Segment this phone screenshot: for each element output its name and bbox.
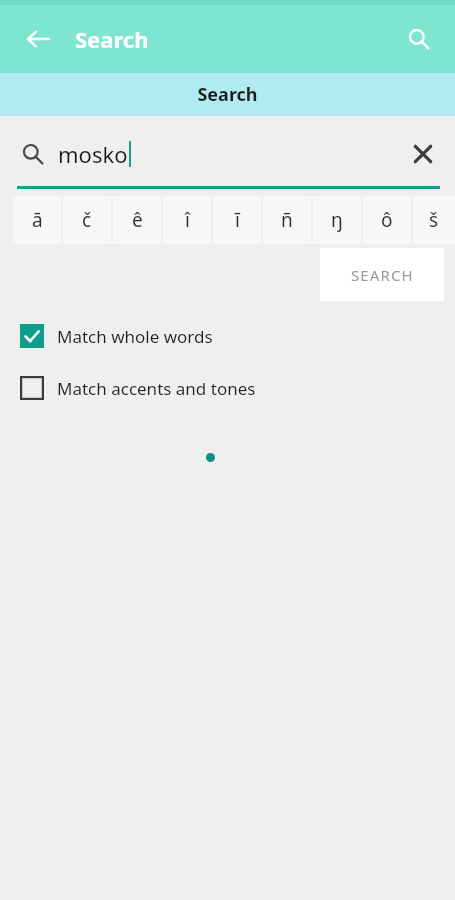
staticText: ê xyxy=(132,207,143,233)
staticText: č xyxy=(82,207,92,233)
staticText: î xyxy=(185,207,190,233)
button[interactable]: Clear search xyxy=(401,132,445,176)
staticText: ā xyxy=(32,207,43,233)
staticText: š xyxy=(429,207,439,233)
button[interactable]: š xyxy=(413,196,455,244)
button[interactable]: î xyxy=(163,196,211,244)
staticText: Search xyxy=(197,82,258,107)
button[interactable]: ā xyxy=(13,196,61,244)
button[interactable]: SEARCH xyxy=(320,248,444,301)
button[interactable]: Back xyxy=(14,15,62,63)
button[interactable]: Match accents and tones xyxy=(0,366,455,410)
button[interactable]: Search xyxy=(0,73,455,116)
button[interactable]: ī xyxy=(213,196,261,244)
staticText: ñ xyxy=(281,207,293,233)
button[interactable]: ŋ xyxy=(313,196,361,244)
staticText: ô xyxy=(381,207,393,233)
staticText: SEARCH xyxy=(351,265,414,285)
staticText: ī xyxy=(235,207,240,233)
button[interactable]: Match whole words xyxy=(0,314,455,358)
staticText: ŋ xyxy=(331,207,343,233)
staticText: mosko xyxy=(58,139,128,169)
button[interactable]: ñ xyxy=(263,196,311,244)
button[interactable]: Search xyxy=(395,15,443,63)
staticText: Match whole words xyxy=(57,325,213,348)
button[interactable]: ê xyxy=(113,196,161,244)
button[interactable]: ô xyxy=(363,196,411,244)
staticText: Search xyxy=(75,24,149,54)
button[interactable]: č xyxy=(63,196,111,244)
staticText: Match accents and tones xyxy=(57,377,256,400)
